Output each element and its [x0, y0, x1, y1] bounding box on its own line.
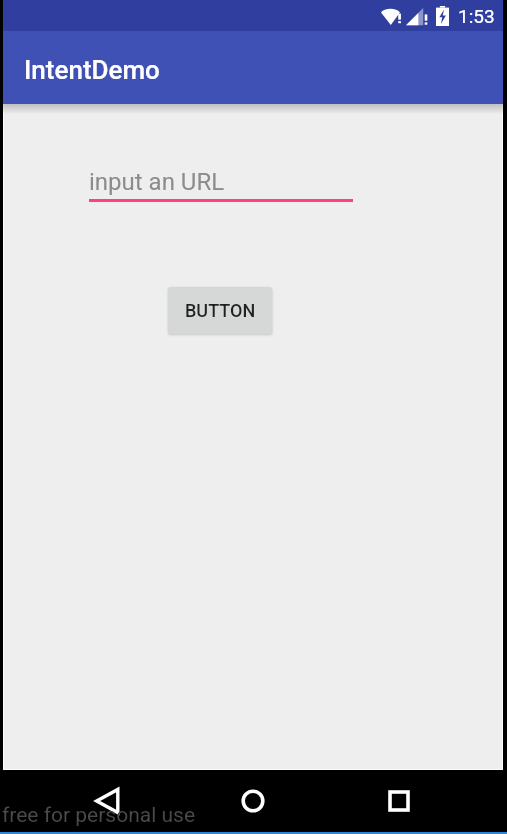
staticText: 1:53: [458, 5, 495, 27]
staticText: BUTTON: [185, 300, 256, 321]
button[interactable]: Home: [228, 775, 278, 826]
button[interactable]: IntentDemo: [3, 31, 503, 104]
staticText: IntentDemo: [24, 55, 160, 85]
staticText: input an URL: [89, 168, 225, 196]
button[interactable]: input an URL: [89, 168, 353, 202]
button[interactable]: Recents: [374, 775, 424, 826]
button[interactable]: BUTTON: [168, 287, 272, 334]
staticText: free for personal use: [2, 803, 196, 828]
button[interactable]: Back: [82, 775, 132, 826]
